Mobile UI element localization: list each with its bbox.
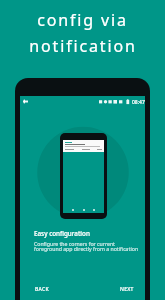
staticText: Easy configuration <box>34 229 90 238</box>
staticText: config via <box>37 9 128 31</box>
staticText: notification <box>29 35 137 57</box>
staticText: BACK <box>35 286 49 293</box>
staticText: NEXT <box>120 286 134 293</box>
staticText: Configure the corners for current foregr… <box>34 240 139 253</box>
staticText: 08:47 <box>132 99 145 106</box>
button[interactable]: BACK <box>31 282 53 297</box>
button[interactable]: NEXT <box>116 282 138 297</box>
